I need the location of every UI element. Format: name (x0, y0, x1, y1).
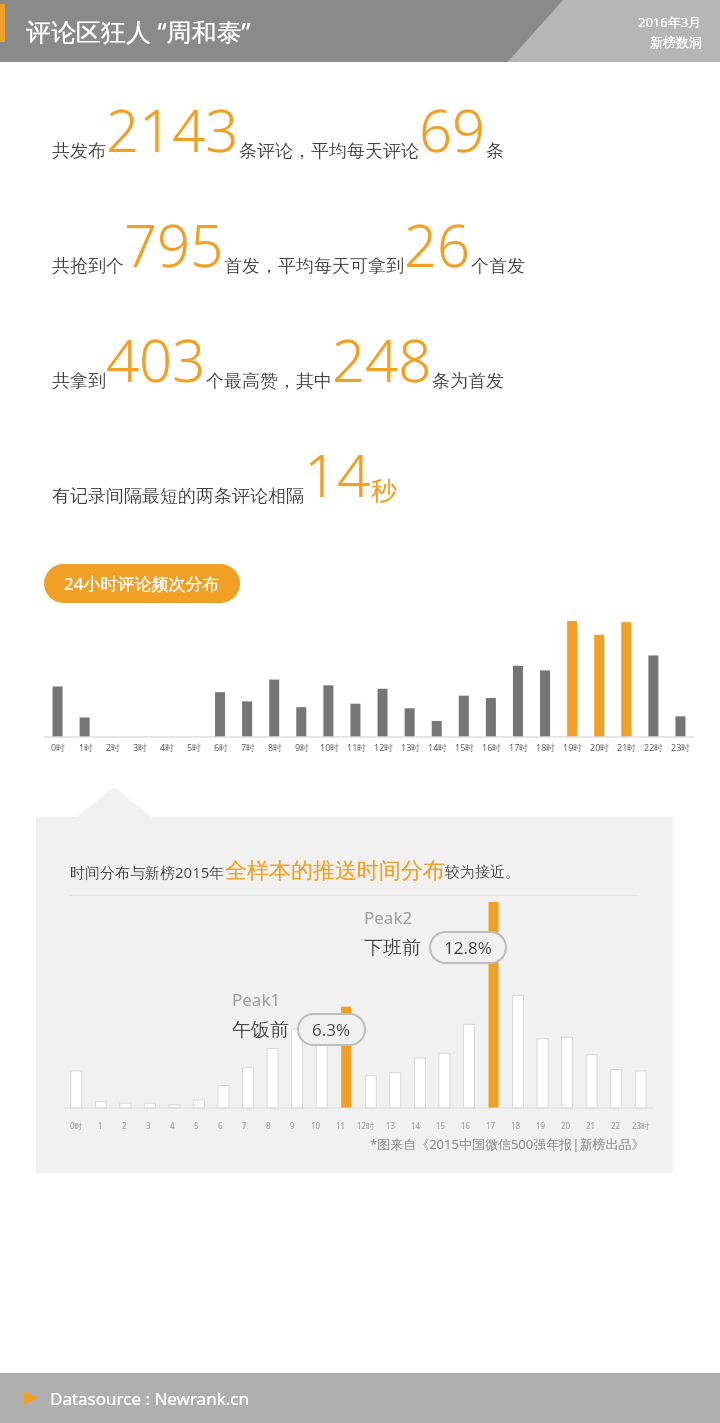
staticText: 403 (106, 320, 206, 399)
staticText: 12时 (357, 1120, 375, 1131)
staticText: 1时 (79, 741, 94, 753)
staticText: 5时 (187, 741, 202, 753)
staticText: 9时 (295, 741, 310, 753)
staticText: 5 (194, 1120, 199, 1131)
staticText: 248 (332, 320, 432, 399)
staticText: 2 (122, 1120, 127, 1131)
staticText: 6 (218, 1120, 223, 1131)
staticText: 4时 (160, 741, 175, 753)
staticText: 14时 (428, 741, 448, 753)
staticText: 11 (336, 1120, 346, 1131)
staticText: 时间分布与新榜2015年 (70, 862, 225, 882)
staticText: 0时 (70, 1120, 83, 1131)
staticText: 2143 (106, 90, 239, 169)
staticText: 1 (98, 1120, 103, 1131)
staticText: 69 (419, 90, 486, 169)
staticText: 20时 (590, 741, 610, 753)
staticText: 18时 (536, 741, 556, 753)
staticText: 评论区狂人 “周和泰” (26, 14, 251, 48)
staticText: 16时 (482, 741, 502, 753)
staticText: 13时 (401, 741, 421, 753)
staticText: 795 (124, 205, 224, 284)
staticText: 较为接近。 (445, 863, 520, 882)
staticText: 23时 (671, 741, 691, 753)
staticText: 个首发 (471, 255, 525, 278)
staticText: 14 (304, 435, 371, 514)
staticText: 9 (290, 1120, 295, 1131)
staticText: 17时 (509, 741, 529, 753)
staticText: 条 (486, 140, 504, 163)
staticText: 午饭前 (232, 1018, 289, 1042)
staticText: 15 (436, 1120, 446, 1131)
staticText: 12.8% (444, 936, 492, 959)
staticText: 19时 (563, 741, 583, 753)
other: Play (24, 1391, 38, 1405)
staticText: Peak1 (232, 988, 281, 1011)
staticText: 18 (511, 1120, 521, 1131)
staticText: 4 (170, 1120, 175, 1131)
staticText: 17 (486, 1120, 496, 1131)
staticText: 全样本的推送时间分布 (225, 857, 445, 885)
staticText: 新榜数洞 (650, 34, 702, 50)
staticText: 24小时评论频次分布 (64, 572, 220, 595)
staticText: 2时 (106, 741, 121, 753)
staticText: 8 (266, 1120, 271, 1131)
staticText: 10 (311, 1120, 321, 1131)
staticText: 共发布 (52, 140, 106, 163)
staticText: 下班前 (364, 936, 421, 960)
staticText: 22 (611, 1120, 621, 1131)
staticText: 7 (242, 1120, 247, 1131)
staticText: 15时 (455, 741, 475, 753)
staticText: 26 (404, 205, 471, 284)
button[interactable]: 24小时评论频次分布 (44, 564, 240, 603)
staticText: 共拿到 (52, 370, 106, 393)
staticText: 10时 (320, 741, 340, 753)
staticText: 首发，平均每天可拿到 (224, 255, 404, 278)
staticText: 6时 (214, 741, 229, 753)
staticText: 23时 (632, 1120, 650, 1131)
staticText: 有记录间隔最短的两条评论相隔 (52, 485, 304, 508)
staticText: 19 (536, 1120, 546, 1131)
staticText: 3时 (133, 741, 148, 753)
staticText: 0时 (51, 741, 66, 753)
staticText: 16 (461, 1120, 471, 1131)
staticText: 8时 (268, 741, 283, 753)
staticText: 条为首发 (432, 370, 504, 393)
staticText: 13 (386, 1120, 396, 1131)
staticText: 个最高赞，其中 (206, 370, 332, 393)
staticText: 21 (586, 1120, 596, 1131)
staticText: 12时 (374, 741, 394, 753)
staticText: 条评论，平均每天评论 (239, 140, 419, 163)
staticText: *图来自《2015中国微信500强年报|新榜出品》 (370, 1135, 645, 1153)
staticText: 共抢到个 (52, 255, 124, 278)
staticText: 14 (411, 1120, 421, 1131)
staticText: 21时 (617, 741, 637, 753)
staticText: 6.3% (312, 1018, 351, 1041)
staticText: Datasource : Newrank.cn (50, 1387, 249, 1410)
staticText: 秒 (371, 475, 397, 508)
staticText: 11时 (347, 741, 367, 753)
staticText: 2016年3月 (638, 13, 702, 31)
staticText: Peak2 (364, 906, 413, 929)
staticText: 20 (561, 1120, 571, 1131)
staticText: 3 (146, 1120, 151, 1131)
staticText: 22时 (644, 741, 664, 753)
staticText: 7时 (241, 741, 256, 753)
